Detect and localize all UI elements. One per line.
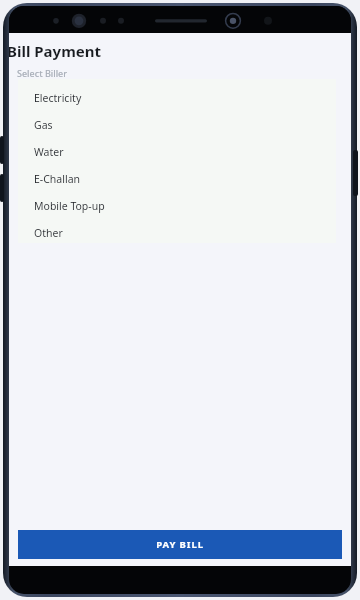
button[interactable]: Water [18,138,336,165]
button[interactable]: Electricity [18,84,336,111]
staticText: PAY BILL [156,538,204,551]
staticText: Gas [34,118,53,132]
staticText: Other [34,226,63,240]
button[interactable]: Gas [18,111,336,138]
staticText: Select Biller [17,67,68,79]
other: Volume up [0,136,4,164]
button[interactable]: E-Challan [18,165,336,192]
button[interactable]: Other [18,219,336,246]
staticText: Electricity [34,91,82,105]
button[interactable]: PAY BILL [18,530,342,559]
staticText: Bill Payment [9,41,102,61]
other: Power [353,150,358,196]
button[interactable]: Mobile Top-up [18,192,336,219]
staticText: Water [34,145,64,159]
other: Volume down [0,174,4,202]
staticText: Mobile Top-up [34,199,105,213]
staticText: E-Challan [34,172,81,186]
